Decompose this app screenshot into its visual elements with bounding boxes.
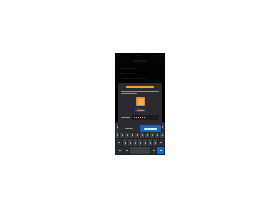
button[interactable]: Key [125,131,129,138]
button[interactable]: Key [116,123,119,130]
button[interactable]: Period [151,147,156,154]
button[interactable]: More options [158,58,163,63]
button[interactable]: Key [140,131,144,138]
button[interactable] [118,124,140,132]
button[interactable]: Key [153,139,157,146]
button[interactable]: Key [150,123,154,130]
button[interactable]: Key [138,139,142,146]
button[interactable]: Key [140,123,144,130]
button[interactable]: Key [155,123,159,130]
button[interactable]: Key [116,131,119,138]
button[interactable] [115,76,165,81]
button[interactable]: Enter [157,147,164,154]
button[interactable] [140,125,161,132]
button[interactable]: Key [145,131,149,138]
button[interactable]: Backspace [158,139,164,146]
button[interactable] [115,81,165,86]
button[interactable]: Key [135,131,139,138]
button[interactable]: Key [155,131,159,138]
button[interactable]: Key [130,123,134,130]
button[interactable]: Key [120,131,124,138]
button[interactable] [115,71,165,76]
button[interactable]: Key [130,131,134,138]
button[interactable]: Key [150,131,154,138]
button[interactable]: Key [148,139,152,146]
button[interactable]: Key [160,131,164,138]
button[interactable]: Symbols [116,147,123,154]
button[interactable] [132,115,159,120]
button[interactable]: Key [160,123,164,130]
button[interactable]: App icon [136,97,145,106]
button[interactable]: Key [123,139,127,146]
button[interactable]: Key [133,139,137,146]
button[interactable]: Key [145,123,149,130]
button[interactable]: Shift [116,139,122,146]
button[interactable]: Key [128,139,132,146]
button[interactable]: Key [125,123,129,130]
button[interactable] [135,108,146,112]
button[interactable] [115,66,165,71]
button[interactable]: Key [143,139,147,146]
button[interactable]: Emoji [124,147,129,154]
